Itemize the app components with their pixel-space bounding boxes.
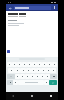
button[interactable]: Key <box>30 74 35 79</box>
button[interactable]: Enter <box>49 80 57 85</box>
button[interactable]: Key <box>26 68 31 73</box>
button[interactable]: Comma <box>13 80 18 85</box>
button[interactable]: Key <box>40 74 45 79</box>
button[interactable]: Key <box>25 74 30 79</box>
button[interactable]: More options <box>52 5 57 10</box>
button[interactable]: Key <box>20 68 26 73</box>
button[interactable]: Key <box>27 62 32 67</box>
button[interactable]: Key <box>47 62 52 67</box>
button[interactable]: Back <box>7 5 13 11</box>
button[interactable]: Symbols <box>7 80 13 85</box>
button[interactable]: Key <box>17 62 22 67</box>
button[interactable]: Key <box>45 74 50 79</box>
button[interactable]: Key <box>20 74 25 79</box>
button[interactable]: Key <box>42 62 47 67</box>
button[interactable]: Key <box>46 68 51 73</box>
button[interactable] <box>19 13 26 17</box>
button[interactable]: Backspace <box>50 74 57 79</box>
button[interactable]: Key <box>51 68 56 73</box>
button[interactable]: Key <box>41 68 46 73</box>
button[interactable] <box>8 13 19 17</box>
button[interactable]: Key <box>8 68 14 73</box>
button[interactable]: Home <box>30 94 34 98</box>
button[interactable]: Key <box>32 62 37 67</box>
button[interactable]: Key <box>7 62 12 67</box>
button[interactable]: Key <box>14 68 20 73</box>
button[interactable]: Period <box>44 80 49 85</box>
button[interactable]: Back <box>11 94 15 98</box>
button[interactable]: Key <box>22 62 27 67</box>
button[interactable]: Key <box>12 62 17 67</box>
button[interactable]: Key <box>37 62 42 67</box>
button[interactable]: Insert <box>7 50 10 53</box>
button[interactable]: Key <box>36 68 41 73</box>
button[interactable]: Key <box>31 68 36 73</box>
button[interactable]: Shift <box>7 74 15 79</box>
button[interactable]: Space <box>18 80 44 85</box>
button[interactable]: Key <box>15 74 20 79</box>
button[interactable]: Key <box>35 74 40 79</box>
button[interactable] <box>14 6 51 10</box>
button[interactable]: Key <box>52 62 57 67</box>
button[interactable]: Recent apps <box>49 94 53 98</box>
